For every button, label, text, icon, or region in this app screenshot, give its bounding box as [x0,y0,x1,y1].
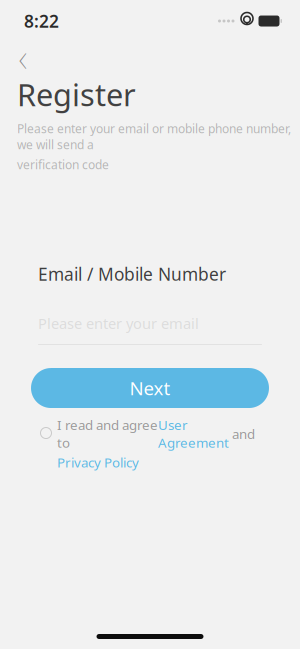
staticText: Please enter your email or mobile phone … [17,121,291,153]
button[interactable]: Agree to terms [37,423,55,443]
staticText: Next [129,376,170,400]
button[interactable]: Privacy Policy [57,453,139,471]
staticText: ‹ [18,30,27,83]
staticText: 8:22 [24,9,59,32]
staticText: User Agreement [158,416,229,451]
button[interactable]: User Agreement [158,416,229,451]
button[interactable]: Back [6,42,40,72]
staticText: Register [17,74,136,115]
button[interactable]: Next [31,368,269,408]
staticText: Privacy Policy [57,453,139,471]
staticText: I read and agree to [57,416,158,451]
staticText: Email / Mobile Number [38,262,226,285]
staticText: verification code [17,157,109,172]
staticText: and [229,425,255,443]
staticText: Please enter your email [38,313,199,333]
